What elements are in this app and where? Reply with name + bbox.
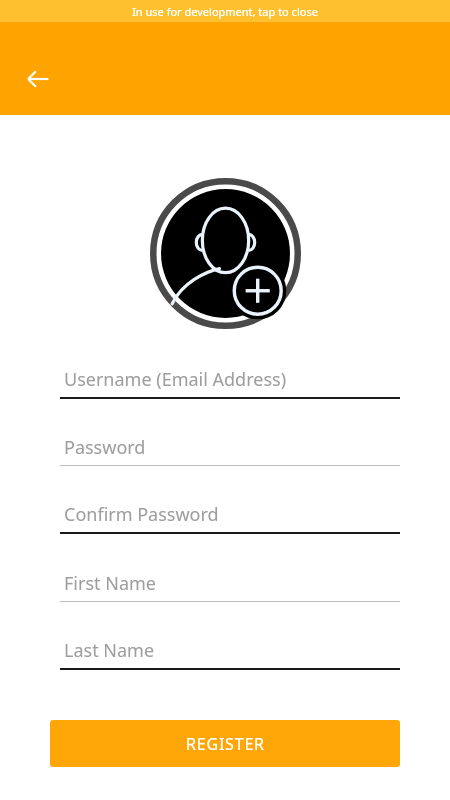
button[interactable]: REGISTER bbox=[50, 720, 400, 767]
button[interactable]: Add profile photo bbox=[150, 178, 301, 329]
button[interactable]: First Name bbox=[60, 571, 400, 602]
staticText: REGISTER bbox=[186, 733, 265, 755]
staticText: In use for development, tap to close bbox=[132, 4, 318, 19]
button[interactable]: Last Name bbox=[60, 638, 400, 670]
staticText: Confirm Password bbox=[64, 502, 219, 527]
button[interactable]: Confirm Password bbox=[60, 502, 400, 534]
button[interactable]: In use for development, tap to close bbox=[0, 0, 450, 22]
staticText: First Name bbox=[64, 571, 156, 596]
staticText: Last Name bbox=[64, 638, 155, 663]
button[interactable]: Password bbox=[60, 435, 400, 466]
button[interactable]: Username (Email Address) bbox=[60, 367, 400, 399]
staticText: Password bbox=[64, 435, 146, 460]
staticText: Username (Email Address) bbox=[64, 367, 287, 392]
button[interactable]: Back bbox=[14, 55, 62, 103]
